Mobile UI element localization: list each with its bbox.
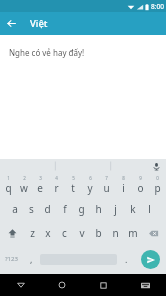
button[interactable]: 8: [115, 173, 132, 197]
staticText: x: [45, 226, 51, 240]
staticText: .: [125, 253, 128, 265]
button[interactable]: .: [118, 245, 134, 273]
staticText: ,: [30, 253, 33, 265]
staticText: w: [20, 181, 28, 195]
button[interactable]: s: [23, 197, 39, 221]
staticText: b: [95, 226, 102, 240]
button[interactable]: z: [24, 221, 40, 245]
staticText: 1: [7, 175, 10, 181]
staticText: 7: [105, 175, 108, 181]
staticText: ?123: [5, 255, 18, 263]
staticText: e: [37, 181, 43, 195]
staticText: Nghe có vẻ hay đấy!: [9, 47, 85, 58]
staticText: m: [128, 226, 138, 240]
staticText: d: [44, 202, 51, 216]
staticText: s: [29, 202, 34, 216]
button[interactable]: 5: [64, 173, 81, 197]
button[interactable]: ,: [23, 245, 39, 273]
button[interactable]: ?123: [0, 245, 23, 273]
button[interactable]: Shift: [0, 221, 24, 245]
button[interactable]: x: [40, 221, 56, 245]
button[interactable]: Backspace: [141, 221, 166, 245]
staticText: 8: [122, 175, 125, 181]
button[interactable]: Back: [0, 274, 41, 296]
staticText: z: [30, 226, 35, 240]
button[interactable]: Voice input: [150, 160, 162, 172]
staticText: 4: [55, 175, 58, 181]
staticText: j: [114, 202, 117, 216]
button[interactable]: j: [107, 197, 124, 221]
staticText: i: [122, 181, 125, 195]
button[interactable]: d: [39, 197, 56, 221]
button[interactable]: 3: [32, 173, 48, 197]
button[interactable]: 2: [16, 173, 32, 197]
staticText: 2: [23, 175, 26, 181]
button[interactable]: 1: [0, 173, 16, 197]
staticText: a: [12, 202, 18, 216]
button[interactable]: Send: [141, 250, 160, 269]
button[interactable]: n: [107, 221, 124, 245]
button[interactable]: Recent apps: [82, 274, 124, 296]
staticText: t: [71, 181, 75, 195]
button[interactable]: 7: [98, 173, 115, 197]
button[interactable]: v: [73, 221, 90, 245]
staticText: v: [79, 226, 85, 240]
staticText: c: [62, 226, 67, 240]
button[interactable]: 6: [81, 173, 98, 197]
staticText: 8:00: [151, 2, 164, 11]
staticText: u: [103, 181, 110, 195]
button[interactable]: Back: [0, 12, 23, 35]
staticText: p: [154, 181, 161, 195]
staticText: 9: [139, 175, 142, 181]
staticText: q: [5, 181, 12, 195]
button[interactable]: k: [124, 197, 141, 221]
button[interactable]: f: [56, 197, 73, 221]
staticText: h: [95, 202, 102, 216]
staticText: 0: [156, 175, 159, 181]
button[interactable]: c: [56, 221, 73, 245]
staticText: g: [78, 202, 85, 216]
staticText: y: [87, 181, 93, 195]
button[interactable]: Hide keyboard: [124, 274, 166, 296]
button[interactable]: 0: [149, 173, 166, 197]
staticText: k: [130, 202, 136, 216]
button[interactable]: 9: [132, 173, 149, 197]
staticText: r: [54, 181, 59, 195]
staticText: l: [148, 202, 151, 216]
staticText: n: [112, 226, 119, 240]
button[interactable]: l: [141, 197, 158, 221]
staticText: f: [63, 202, 67, 216]
button[interactable]: g: [73, 197, 90, 221]
staticText: 6: [89, 175, 92, 181]
button[interactable]: h: [90, 197, 107, 221]
staticText: 3: [39, 175, 42, 181]
button[interactable]: b: [90, 221, 107, 245]
button[interactable]: a: [7, 197, 23, 221]
button[interactable]: Home: [41, 274, 82, 296]
staticText: o: [137, 181, 144, 195]
button[interactable]: 4: [48, 173, 64, 197]
staticText: Việt: [30, 17, 48, 30]
button[interactable]: m: [124, 221, 141, 245]
staticText: 5: [72, 175, 75, 181]
